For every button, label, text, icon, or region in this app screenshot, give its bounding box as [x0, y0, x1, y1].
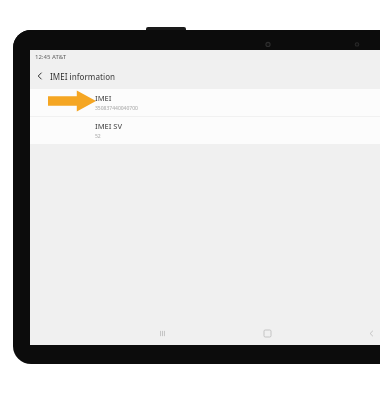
button[interactable]: Back	[30, 66, 50, 86]
staticText: 12:45 AT&T	[35, 53, 67, 61]
button[interactable]: IMEI	[30, 89, 380, 116]
staticText: IMEI information	[50, 71, 116, 82]
staticText: IMEI	[95, 93, 112, 103]
button[interactable]: Recent apps	[150, 321, 174, 345]
button[interactable]: Home	[255, 321, 279, 345]
staticText: IMEI SV	[95, 121, 123, 131]
staticText: 350837440040700	[95, 105, 138, 112]
staticText: 52	[95, 133, 101, 140]
button[interactable]: IMEI SV	[30, 117, 380, 144]
button[interactable]: Back	[359, 321, 380, 345]
